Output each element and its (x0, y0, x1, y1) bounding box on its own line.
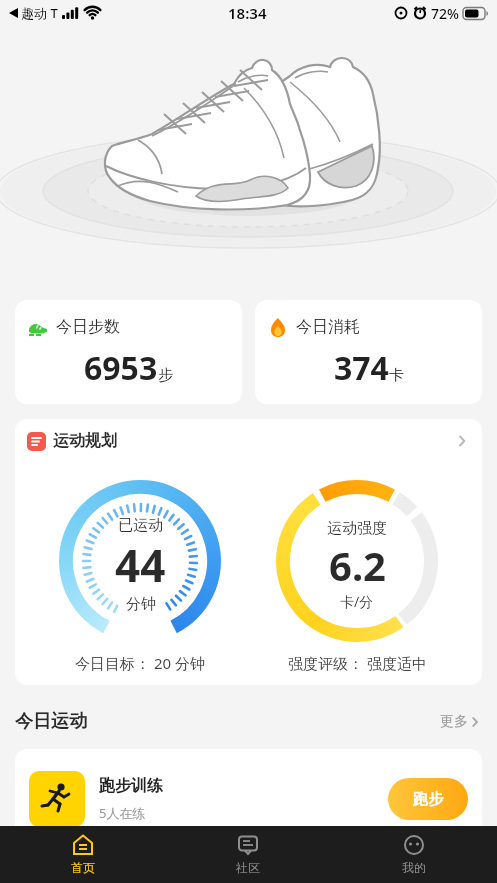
staticText: 趣动 T (21, 4, 58, 22)
staticText: 跑步 (413, 790, 443, 809)
staticText: 跑步训练 (99, 776, 163, 796)
staticText: 18:34 (228, 3, 267, 23)
staticText: 卡 (389, 366, 404, 385)
staticText: 72% (431, 4, 459, 23)
staticText: 运动规划 (53, 431, 117, 451)
button[interactable]: 跑步 (388, 778, 468, 820)
staticText: 运动强度 (327, 519, 387, 538)
staticText: 卡/分 (340, 592, 374, 611)
button[interactable]: 今日步数 (15, 300, 242, 404)
staticText: 今日步数 (56, 317, 120, 337)
staticText: 今日运动 (15, 710, 87, 733)
button[interactable]: 社区 (165, 826, 331, 883)
staticText: 374 (334, 346, 389, 390)
button[interactable]: 今日消耗 (255, 300, 482, 404)
button[interactable]: 首页 (0, 826, 165, 883)
staticText: 已运动 (118, 516, 163, 535)
button[interactable]: 我的 (331, 826, 497, 883)
staticText: 6953 (84, 346, 158, 390)
staticText: 5人在练 (99, 804, 146, 822)
staticText: 今日目标： 20 分钟 (75, 653, 205, 673)
staticText: 步 (158, 366, 173, 385)
staticText: 我的 (402, 860, 426, 875)
button[interactable]: 运动规划 (15, 419, 482, 451)
staticText: 社区 (236, 860, 260, 875)
staticText: 分钟 (126, 595, 156, 614)
staticText: 6.2 (329, 538, 386, 592)
staticText: 首页 (71, 860, 95, 875)
staticText: 44 (115, 535, 166, 595)
staticText: 今日消耗 (296, 317, 360, 337)
button[interactable]: 跑步训练 (15, 749, 482, 849)
staticText: 强度评级： 强度适中 (288, 653, 427, 673)
staticText: 更多 (440, 713, 468, 731)
button[interactable]: 更多 (440, 713, 482, 731)
